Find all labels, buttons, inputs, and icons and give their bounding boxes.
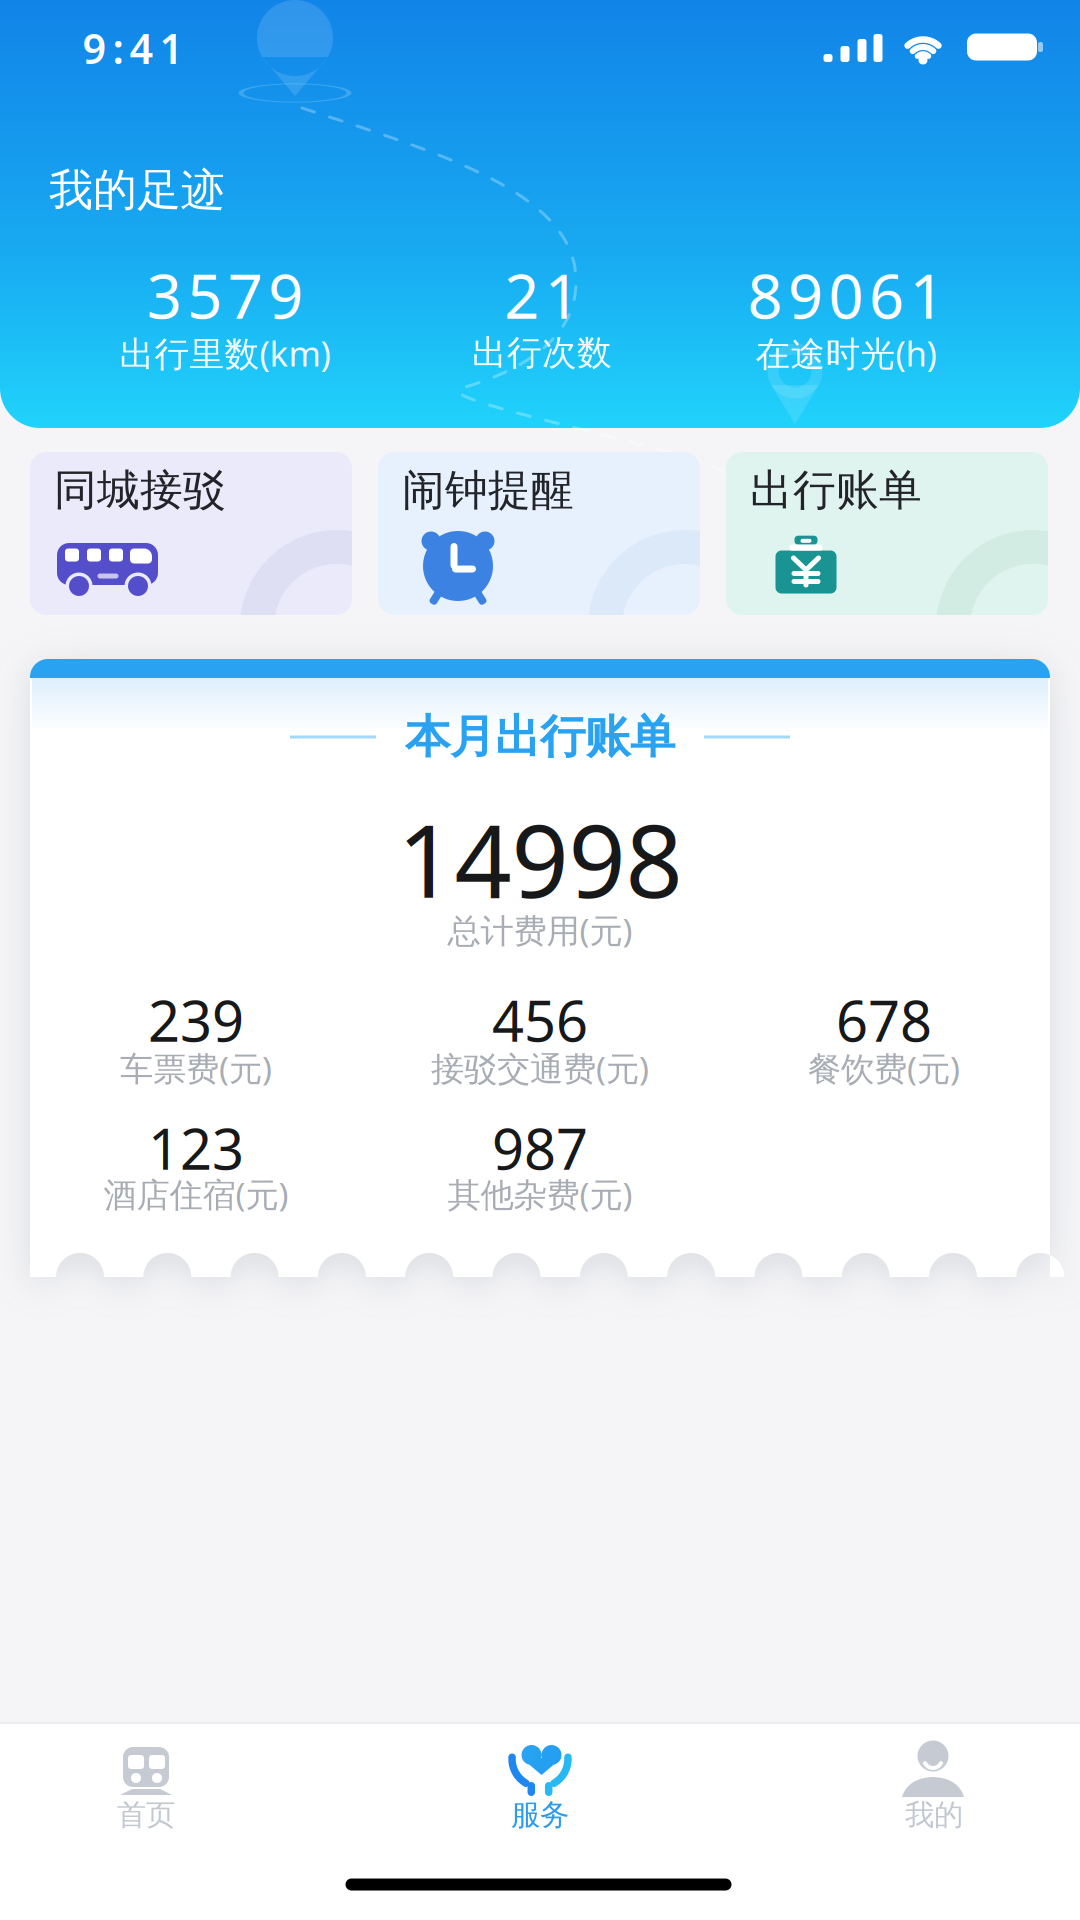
button[interactable]: 服务: [440, 1740, 640, 1840]
staticText: 123: [148, 1111, 244, 1185]
staticText: 总计费用(元): [447, 908, 632, 952]
staticText: 出行里数(km): [119, 330, 330, 376]
button[interactable]: 出行账单: [726, 452, 1048, 615]
staticText: 首页: [117, 1797, 175, 1833]
staticText: 服务: [511, 1797, 569, 1833]
staticText: 456: [492, 983, 588, 1057]
staticText: 14998: [397, 793, 682, 925]
staticText: 678: [836, 983, 932, 1057]
staticText: 出行账单: [750, 464, 922, 516]
staticText: 987: [492, 1111, 588, 1185]
staticText: 本月出行账单: [405, 709, 675, 765]
staticText: 在途时光(h): [755, 330, 936, 376]
staticText: 21: [504, 254, 580, 336]
staticText: 闹钟提醒: [402, 464, 574, 516]
button[interactable]: 闹钟提醒: [378, 452, 700, 615]
staticText: 89061: [747, 254, 944, 336]
staticText: 接驳交通费(元): [431, 1046, 649, 1090]
staticText: 车票费(元): [120, 1046, 272, 1090]
staticText: 239: [148, 983, 244, 1057]
button[interactable]: 同城接驳: [30, 452, 352, 615]
button[interactable]: 首页: [46, 1740, 246, 1840]
staticText: 3579: [147, 254, 303, 336]
staticText: 酒店住宿(元): [103, 1172, 288, 1216]
staticText: 其他杂费(元): [447, 1172, 632, 1216]
staticText: 我的: [905, 1797, 963, 1833]
staticText: 9:41: [82, 21, 183, 75]
staticText: 出行次数: [472, 332, 612, 374]
staticText: 同城接驳: [54, 464, 226, 516]
staticText: 餐饮费(元): [808, 1046, 960, 1090]
staticText: 我的足迹: [49, 163, 225, 217]
button[interactable]: 我的: [834, 1740, 1034, 1840]
